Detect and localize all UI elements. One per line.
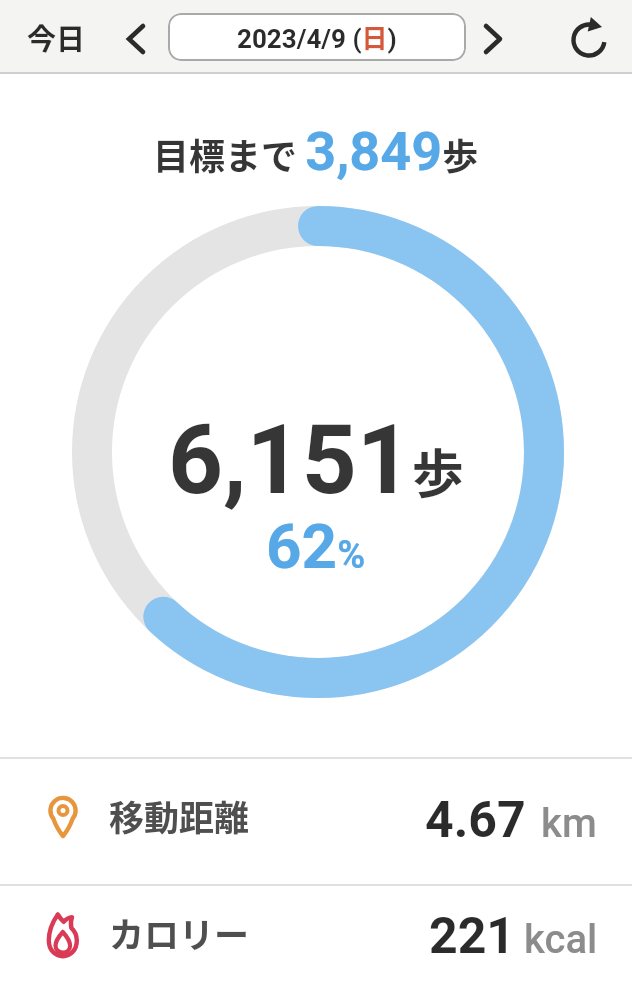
staticText: カロリー [109, 907, 250, 958]
button[interactable]: 移動距離 [0, 754, 632, 882]
staticText: 4.67 [425, 791, 526, 850]
staticText: 今日 [27, 16, 86, 58]
button[interactable]: カロリー [0, 871, 632, 999]
button[interactable] [122, 23, 150, 55]
button[interactable] [479, 23, 507, 55]
staticText: 221 [429, 907, 516, 966]
staticText: 目標まで 3,849歩 [153, 120, 479, 183]
staticText: kcal [524, 916, 598, 963]
staticText: 6,151歩 [168, 404, 464, 510]
button[interactable]: 今日 [18, 10, 95, 64]
staticText: 移動距離 [109, 790, 250, 841]
staticText: 2023/4/9 (日) [237, 18, 397, 56]
button[interactable]: 2023/4/9 (日) [168, 13, 466, 61]
staticText: km [541, 800, 597, 847]
staticText: 62% [266, 510, 366, 576]
button[interactable] [566, 16, 612, 62]
